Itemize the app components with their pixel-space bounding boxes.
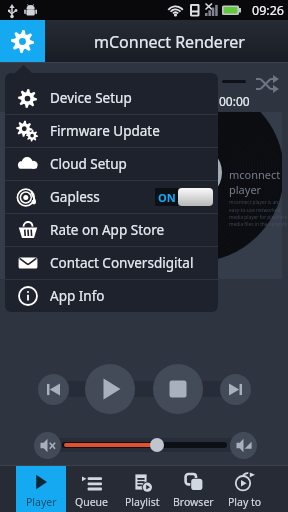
staticText: 00:00: [219, 93, 250, 109]
button[interactable]: Browser: [168, 466, 219, 512]
staticText: Playlist: [125, 495, 160, 509]
button[interactable]: Contact Conversdigital: [5, 247, 218, 279]
staticText: player: [229, 182, 262, 197]
button[interactable]: ON: [155, 188, 213, 206]
staticText: App Info: [50, 287, 105, 305]
staticText: Player: [26, 495, 57, 509]
button[interactable]: Queue: [66, 466, 117, 512]
other: Shuffle: [256, 76, 280, 92]
staticText: Contact Conversdigital: [50, 254, 194, 272]
staticText: mconnect player is an easy-to-use networ…: [229, 199, 288, 227]
staticText: mConnect Renderer: [94, 31, 245, 53]
staticText: Queue: [75, 495, 109, 509]
staticText: Device Setup: [50, 89, 132, 107]
button[interactable]: Device Setup: [5, 82, 218, 114]
button[interactable]: Gapless: [5, 181, 218, 213]
staticText: Gapless: [50, 188, 100, 206]
button[interactable]: Play: [85, 364, 135, 414]
staticText: Browser: [173, 495, 214, 509]
staticText: ON: [158, 190, 176, 205]
button[interactable]: Player: [16, 466, 66, 512]
staticText: mconnect: [229, 167, 281, 182]
staticText: Play to: [228, 495, 262, 509]
staticText: Rate on App Store: [50, 221, 165, 239]
button[interactable]: Play to: [219, 466, 270, 512]
button[interactable]: Previous: [38, 374, 69, 405]
button[interactable]: Cloud Setup: [5, 148, 218, 180]
button[interactable]: Firmware Update: [5, 115, 218, 147]
button[interactable]: Volume up: [230, 432, 257, 459]
button[interactable]: Mute: [34, 432, 61, 459]
button[interactable]: Stop: [153, 364, 203, 414]
staticText: Firmware Update: [50, 122, 160, 140]
button[interactable]: Playlist: [117, 466, 168, 512]
button[interactable]: App Info: [5, 280, 218, 312]
button[interactable]: Next: [220, 374, 251, 405]
button[interactable]: Rate on App Store: [5, 214, 218, 246]
staticText: Cloud Setup: [50, 155, 127, 173]
button[interactable]: Settings menu: [0, 20, 45, 63]
staticText: 09:26: [252, 2, 284, 19]
button[interactable]: Volume slider: [150, 438, 164, 452]
